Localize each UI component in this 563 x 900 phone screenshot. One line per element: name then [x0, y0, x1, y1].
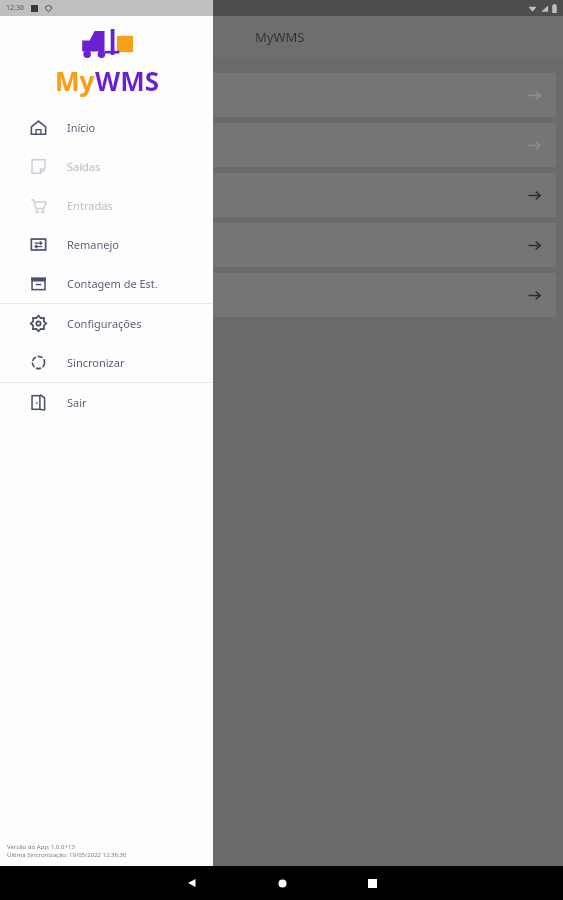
button[interactable]: Home — [260, 866, 304, 900]
staticText: Sair — [67, 395, 87, 410]
staticText: Contagem de Est. — [67, 276, 158, 291]
button[interactable] — [7, 173, 556, 217]
button[interactable]: Saídas — [0, 147, 213, 186]
button[interactable]: Configurações — [0, 304, 213, 343]
staticText: 12:36 — [6, 3, 24, 13]
button[interactable]: Remanejo — [0, 225, 213, 264]
button[interactable]: Entradas — [0, 186, 213, 225]
button[interactable]: Sair — [0, 383, 213, 422]
staticText: Configurações — [67, 316, 142, 331]
button[interactable]: Recents — [350, 866, 394, 900]
button[interactable] — [7, 273, 556, 317]
staticText: MyWMS — [255, 28, 305, 46]
staticText: Última Sincronização: 19/05/2022 12:36:3… — [7, 851, 127, 859]
staticText: Versão do App: 1.0.0+13 — [7, 843, 75, 851]
staticText: Sincronizar — [67, 355, 125, 370]
button[interactable] — [7, 73, 556, 117]
button[interactable]: Contagem de Est. — [0, 264, 213, 303]
staticText: Início — [67, 120, 96, 135]
button[interactable] — [7, 223, 556, 267]
button[interactable] — [7, 123, 556, 167]
staticText: Saídas — [67, 159, 101, 174]
button[interactable]: Início — [0, 108, 213, 147]
staticText: Entradas — [67, 198, 113, 213]
button[interactable]: Sincronizar — [0, 343, 213, 382]
staticText: WMS — [95, 63, 159, 98]
staticText: Remanejo — [67, 237, 119, 252]
staticText: My — [55, 63, 95, 98]
button[interactable]: Back — [170, 866, 214, 900]
